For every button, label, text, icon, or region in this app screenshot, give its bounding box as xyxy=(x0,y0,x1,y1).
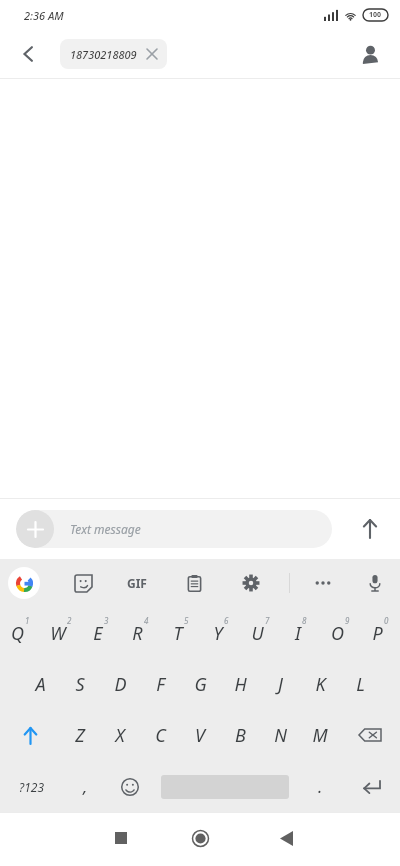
staticText: Text message xyxy=(70,521,141,537)
button[interactable]: A xyxy=(20,659,60,709)
staticText: B xyxy=(235,723,246,748)
staticText: Y xyxy=(213,621,223,646)
button[interactable]: T xyxy=(160,607,200,659)
staticText: 2:36 AM xyxy=(24,8,64,23)
button[interactable]: Backspace xyxy=(340,709,400,761)
button[interactable]: J xyxy=(260,659,300,709)
staticText: G xyxy=(194,672,207,697)
staticText: N xyxy=(274,723,287,748)
button[interactable]: H xyxy=(220,659,260,709)
staticText: C xyxy=(155,723,166,748)
staticText: R xyxy=(132,621,143,646)
staticText: 0 xyxy=(384,615,389,626)
button[interactable]: E xyxy=(80,607,120,659)
button[interactable]: D xyxy=(100,659,140,709)
staticText: GIF xyxy=(127,575,147,591)
button[interactable]: U xyxy=(240,607,280,659)
button[interactable]: Enter xyxy=(342,761,400,812)
staticText: M xyxy=(312,723,328,748)
button[interactable]: Y xyxy=(200,607,240,659)
button[interactable]: Comma xyxy=(62,761,108,812)
button[interactable]: 18730218809 xyxy=(60,39,167,69)
button[interactable]: Recents xyxy=(99,816,143,860)
button[interactable]: X xyxy=(100,709,140,761)
staticText: F xyxy=(156,672,165,697)
button[interactable]: More options xyxy=(304,564,342,602)
staticText: Z xyxy=(75,723,85,748)
staticText: U xyxy=(251,621,264,646)
button[interactable]: Emoji xyxy=(108,761,152,812)
staticText: V xyxy=(195,723,205,748)
button[interactable]: Add attachment xyxy=(16,510,332,548)
staticText: T xyxy=(173,621,183,646)
staticText: L xyxy=(356,672,365,697)
staticText: J xyxy=(278,672,283,697)
button[interactable]: B xyxy=(220,709,260,761)
button[interactable]: G xyxy=(180,659,220,709)
staticText: 1 xyxy=(25,615,30,626)
button[interactable]: V xyxy=(180,709,220,761)
button[interactable]: ?123 xyxy=(0,761,62,812)
button[interactable]: F xyxy=(140,659,180,709)
button[interactable]: R xyxy=(120,607,160,659)
staticText: H xyxy=(234,672,247,697)
staticText: 6 xyxy=(224,615,229,626)
button[interactable]: Stickers xyxy=(64,564,102,602)
staticText: 9 xyxy=(345,615,350,626)
button[interactable]: L xyxy=(340,659,380,709)
staticText: 100 xyxy=(369,10,382,20)
button[interactable]: K xyxy=(300,659,340,709)
button[interactable]: Google xyxy=(8,567,40,599)
button[interactable]: Add attachment xyxy=(16,510,54,548)
button[interactable]: Back xyxy=(264,816,308,860)
staticText: S xyxy=(75,672,85,697)
button[interactable]: N xyxy=(260,709,300,761)
staticText: W xyxy=(50,621,66,646)
staticText: 7 xyxy=(265,615,270,626)
button[interactable]: Send xyxy=(348,507,392,551)
staticText: 5 xyxy=(184,615,189,626)
staticText: E xyxy=(93,621,103,646)
button[interactable]: Contact details xyxy=(350,34,390,74)
button[interactable]: Settings xyxy=(232,564,270,602)
button[interactable]: P xyxy=(360,607,400,659)
staticText: 4 xyxy=(144,615,149,626)
staticText: A xyxy=(35,672,46,697)
button[interactable]: M xyxy=(300,709,340,761)
button[interactable]: Clipboard xyxy=(175,564,213,602)
button[interactable]: GIF xyxy=(117,563,157,603)
staticText: X xyxy=(115,723,125,748)
staticText: K xyxy=(315,672,326,697)
button[interactable]: Z xyxy=(60,709,100,761)
button[interactable]: Back xyxy=(10,35,48,73)
button[interactable]: Home xyxy=(178,816,222,860)
staticText: ?123 xyxy=(19,779,44,795)
staticText: I xyxy=(295,621,301,646)
staticText: 3 xyxy=(104,615,109,626)
button[interactable]: I xyxy=(280,607,320,659)
button[interactable]: S xyxy=(60,659,100,709)
button[interactable]: W xyxy=(40,607,80,659)
staticText: 18730218809 xyxy=(70,47,137,62)
button[interactable]: C xyxy=(140,709,180,761)
staticText: Q xyxy=(11,621,24,646)
staticText: . xyxy=(318,775,323,798)
button[interactable]: Voice input xyxy=(356,564,394,602)
staticText: D xyxy=(114,672,127,697)
staticText: 8 xyxy=(302,615,307,626)
button[interactable]: Shift xyxy=(0,709,60,761)
button[interactable]: Period xyxy=(298,761,342,812)
staticText: , xyxy=(83,775,88,798)
staticText: O xyxy=(331,621,344,646)
staticText: 2 xyxy=(67,615,72,626)
button[interactable]: Q xyxy=(0,607,40,659)
button[interactable]: O xyxy=(320,607,360,659)
staticText: P xyxy=(372,621,383,646)
